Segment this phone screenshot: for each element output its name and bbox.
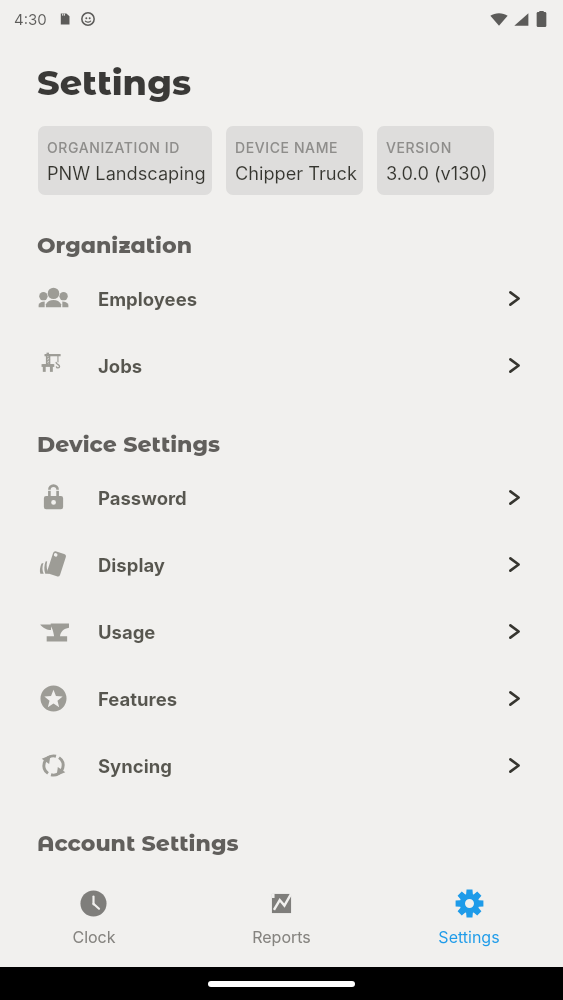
staticText: Settings [37,61,192,104]
staticText: PNW Landscaping [47,162,206,184]
button[interactable]: Features [0,665,563,732]
staticText: Clock [72,927,116,946]
staticText: VERSION [386,139,452,156]
staticText: Reports [252,927,311,946]
staticText: Syncing [98,755,172,777]
button[interactable]: Password [0,464,563,531]
staticText: DEVICE NAME [235,139,339,156]
staticText: Account Settings [37,830,239,857]
staticText: Device Settings [37,431,221,458]
button[interactable]: Employees [0,265,563,332]
button[interactable]: Clock [0,862,187,967]
button[interactable]: Jobs [0,332,563,399]
staticText: ORGANIZATION ID [47,139,180,156]
staticText: Organization [37,232,192,259]
staticText: Settings [438,927,500,946]
staticText: Jobs [98,355,143,377]
staticText: 4:30 [14,10,47,28]
staticText: Display [98,554,165,576]
button[interactable]: Settings [375,862,563,967]
staticText: Employees [98,288,198,310]
staticText: Password [98,487,187,509]
button[interactable]: Display [0,531,563,598]
staticText: Features [98,688,178,710]
staticText: Chipper Truck [235,162,357,184]
button[interactable]: Usage [0,598,563,665]
button[interactable]: Syncing [0,732,563,799]
staticText: Usage [98,621,156,643]
staticText: 3.0.0 (v130) [386,162,488,184]
button[interactable]: Reports [187,862,375,967]
